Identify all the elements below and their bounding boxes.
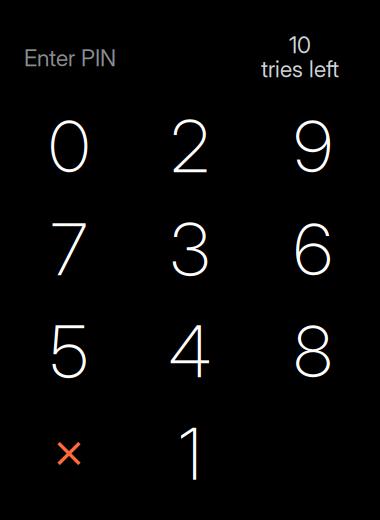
button[interactable]: Delete [0, 402, 127, 505]
button[interactable]: 6 [253, 197, 380, 300]
button[interactable]: 7 [0, 197, 127, 300]
staticText: 3 [170, 205, 210, 292]
staticText: 1 [178, 410, 201, 497]
staticText: 8 [293, 307, 332, 394]
button[interactable]: 1 [126, 402, 253, 505]
staticText: 7 [50, 205, 87, 292]
button[interactable]: 8 [253, 299, 380, 402]
staticText: tries left [261, 55, 339, 83]
staticText: 5 [50, 307, 88, 394]
staticText: 10 [289, 31, 311, 59]
button[interactable]: 4 [126, 299, 253, 402]
button[interactable]: 2 [126, 94, 253, 197]
staticText: Enter PIN [24, 44, 116, 72]
button[interactable]: 9 [253, 94, 380, 197]
staticText: 2 [170, 102, 209, 189]
button[interactable]: 3 [126, 197, 253, 300]
staticText: 6 [293, 205, 332, 292]
button[interactable]: 0 [0, 94, 127, 197]
staticText: 4 [168, 307, 211, 394]
staticText: 9 [293, 102, 332, 189]
button[interactable]: 5 [0, 299, 127, 402]
staticText: 0 [48, 102, 89, 189]
